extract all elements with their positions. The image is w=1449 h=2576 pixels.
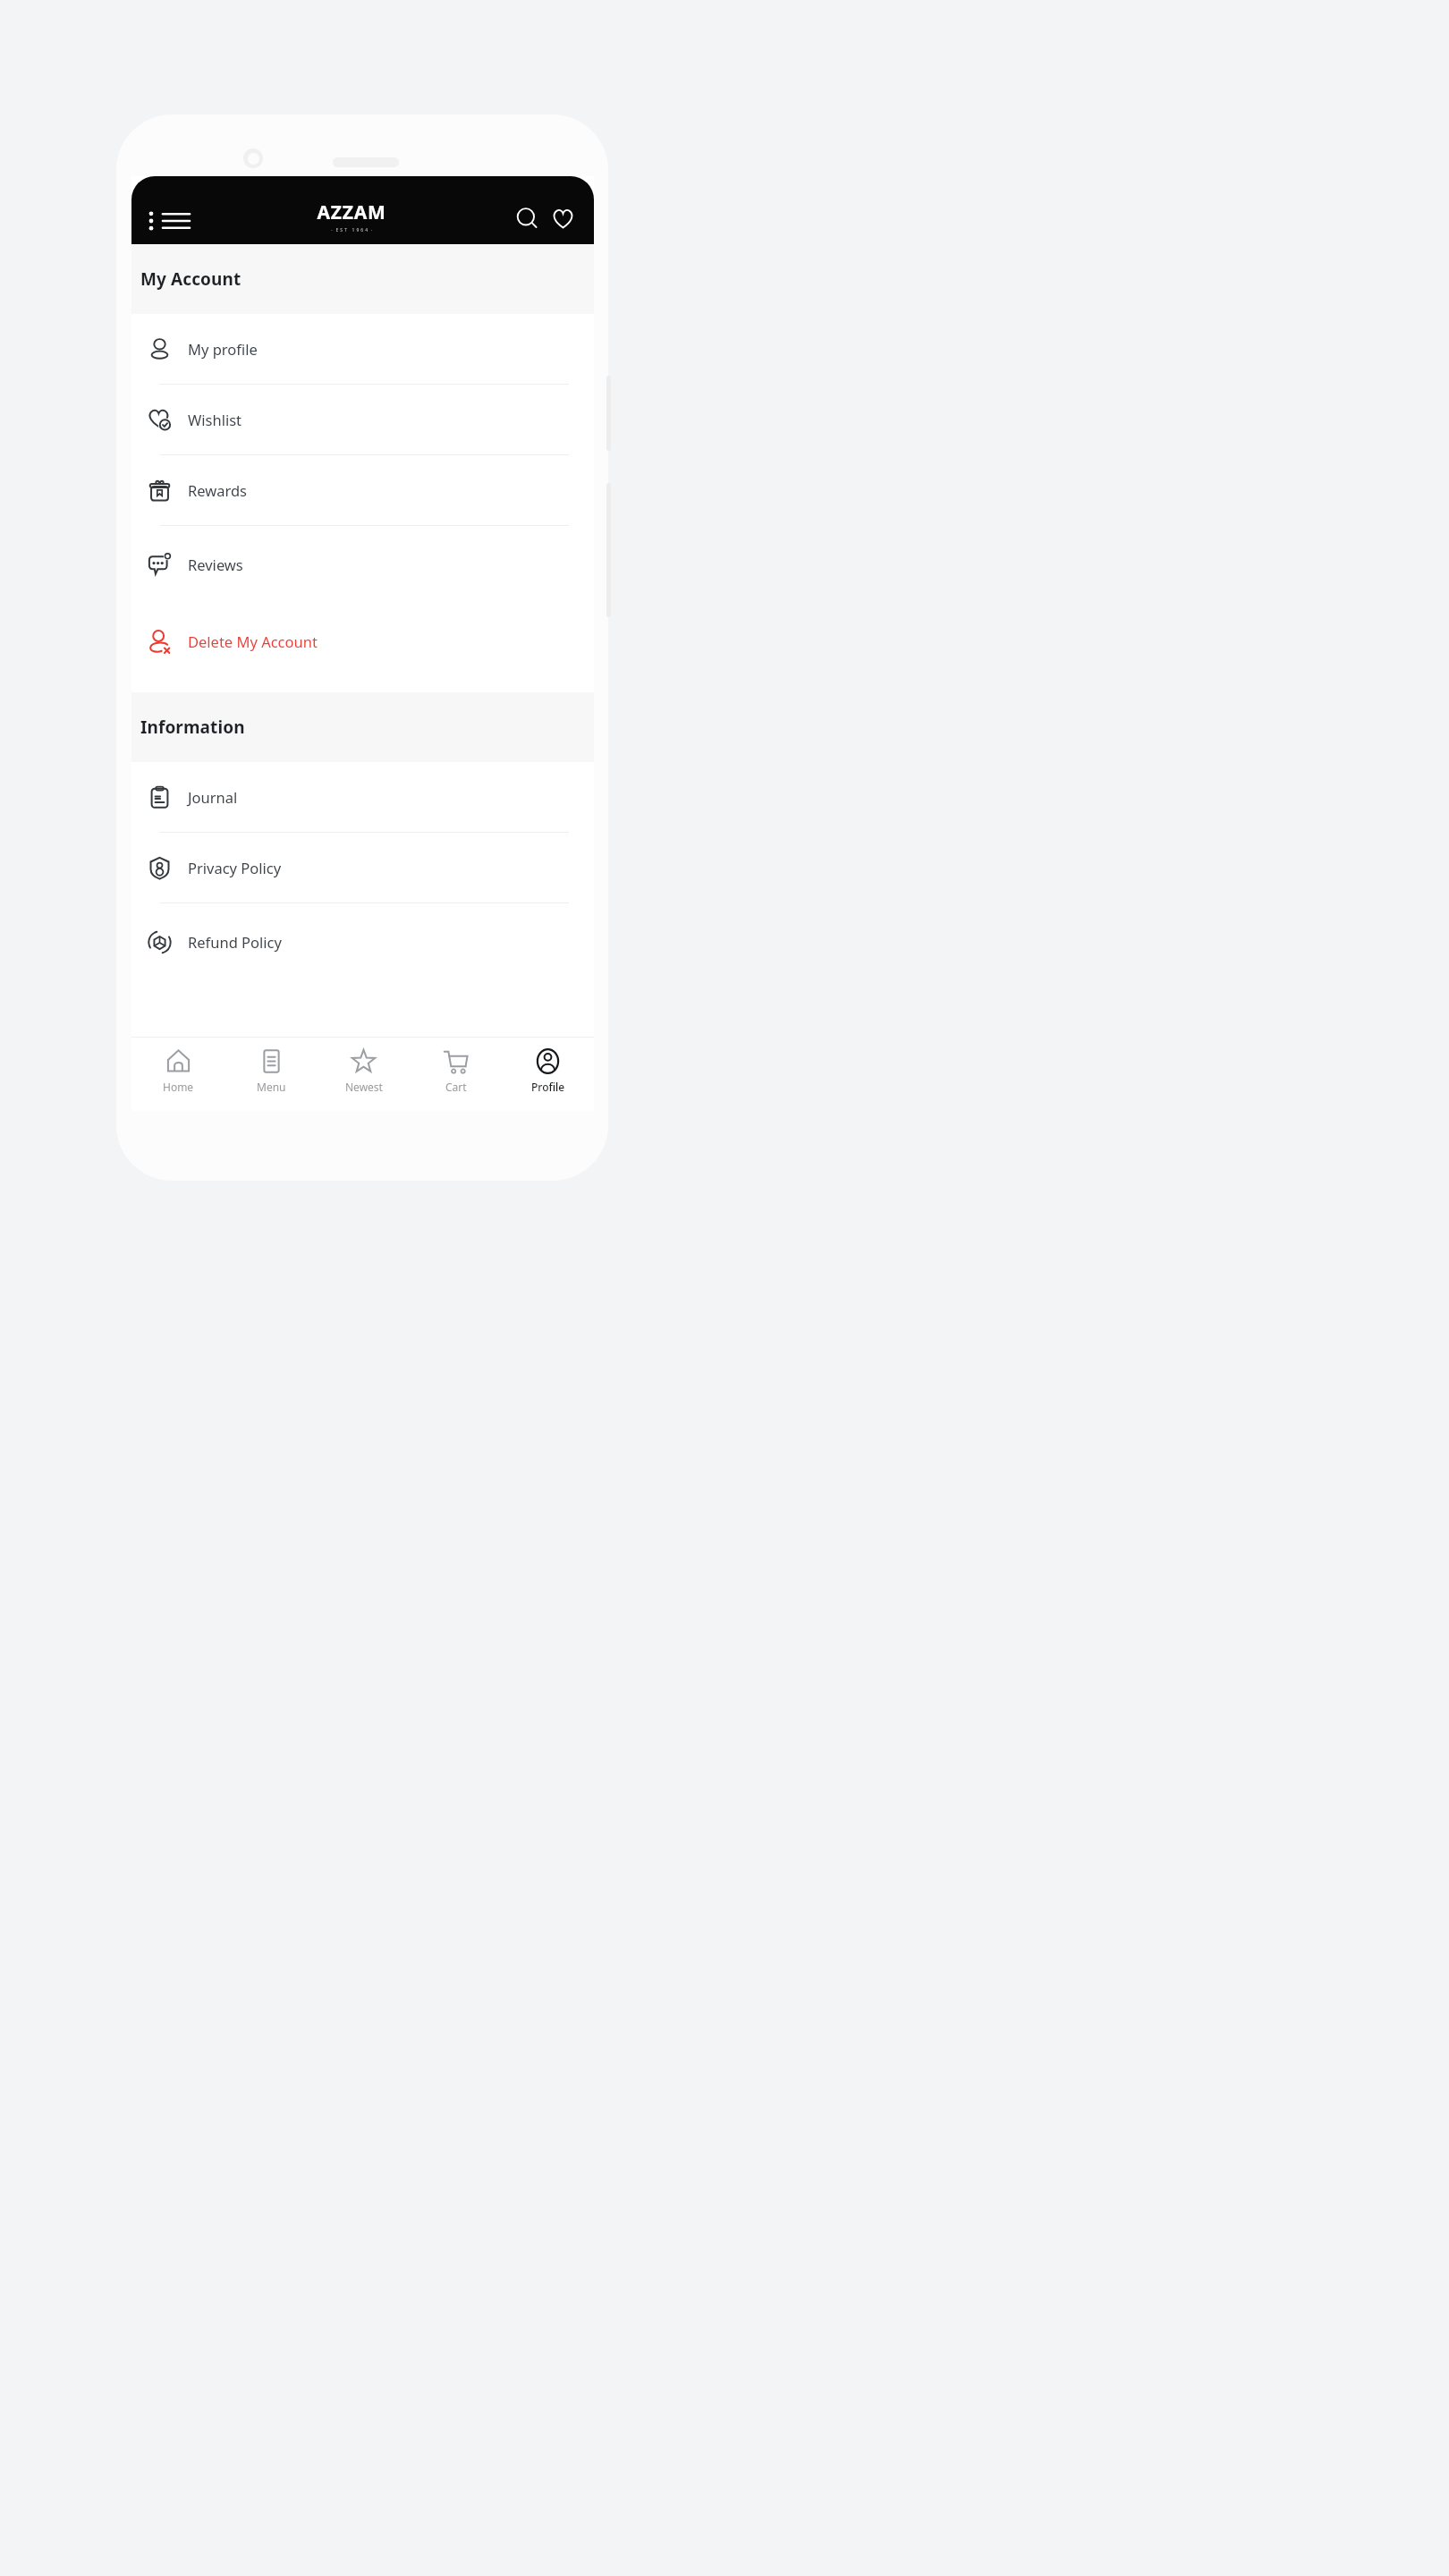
button[interactable]: Rewards: [131, 455, 594, 525]
staticText: Menu: [257, 1080, 286, 1094]
button[interactable]: Delete My Account: [131, 603, 594, 680]
button[interactable]: Privacy Policy: [131, 833, 594, 902]
button[interactable]: Profile: [502, 1038, 594, 1111]
button[interactable]: My profile: [131, 314, 594, 384]
staticText: Wishlist: [188, 410, 242, 429]
staticText: Refund Policy: [188, 932, 282, 952]
button[interactable]: Search: [512, 203, 542, 233]
button[interactable]: Cart: [410, 1038, 502, 1111]
staticText: AZZAM: [317, 199, 386, 225]
button[interactable]: Newest: [318, 1038, 410, 1111]
staticText: Journal: [188, 787, 238, 807]
staticText: Newest: [345, 1080, 383, 1094]
staticText: Home: [163, 1080, 194, 1094]
button[interactable]: Wishlist: [547, 203, 578, 233]
button[interactable]: Refund Policy: [131, 903, 594, 980]
button[interactable]: Wishlist: [131, 385, 594, 454]
button[interactable]: Home: [131, 1038, 225, 1111]
staticText: Profile: [531, 1080, 565, 1094]
staticText: My Account: [140, 267, 241, 291]
button[interactable]: Menu: [146, 210, 191, 232]
button[interactable]: Journal: [131, 762, 594, 832]
staticText: Rewards: [188, 480, 247, 500]
staticText: Information: [140, 716, 245, 739]
staticText: Privacy Policy: [188, 858, 282, 877]
staticText: Cart: [445, 1080, 467, 1094]
button[interactable]: Menu: [225, 1038, 318, 1111]
button[interactable]: Reviews: [131, 526, 594, 603]
staticText: My profile: [188, 339, 258, 359]
staticText: Reviews: [188, 555, 243, 574]
staticText: Delete My Account: [188, 631, 318, 651]
staticText: · E S T 1 9 6 4 ·: [331, 227, 373, 233]
